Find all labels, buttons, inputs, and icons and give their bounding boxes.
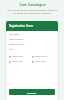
staticText: Registration Form	[9, 24, 34, 28]
staticText: Option One	[12, 55, 23, 58]
button[interactable]: Option One	[9, 55, 31, 58]
staticText: Option Four	[35, 60, 47, 63]
staticText: Email Address	[9, 38, 24, 41]
button[interactable]: Email Address	[9, 37, 55, 42]
staticText: Phone Number	[9, 43, 25, 46]
staticText: Option Three	[35, 55, 48, 58]
staticText: SUBMIT	[27, 91, 37, 94]
button[interactable]: City	[9, 47, 55, 52]
button[interactable]: Option Three	[32, 55, 55, 58]
button[interactable]: Full Name	[9, 32, 55, 37]
button[interactable]: Option Four	[32, 60, 55, 63]
staticText: Option Two	[12, 60, 23, 63]
staticText: City	[9, 48, 13, 51]
staticText: Cart Catalogue	[19, 2, 46, 7]
button[interactable]: Phone Number	[9, 42, 55, 47]
staticText: Lorem ipsum dolor sit amet consectetur a…	[7, 9, 57, 15]
staticText: Full Name	[9, 33, 20, 36]
button[interactable]: Registration Form	[6, 21, 58, 31]
button[interactable]: SUBMIT	[9, 89, 55, 95]
button[interactable]: Option Two	[9, 60, 31, 63]
